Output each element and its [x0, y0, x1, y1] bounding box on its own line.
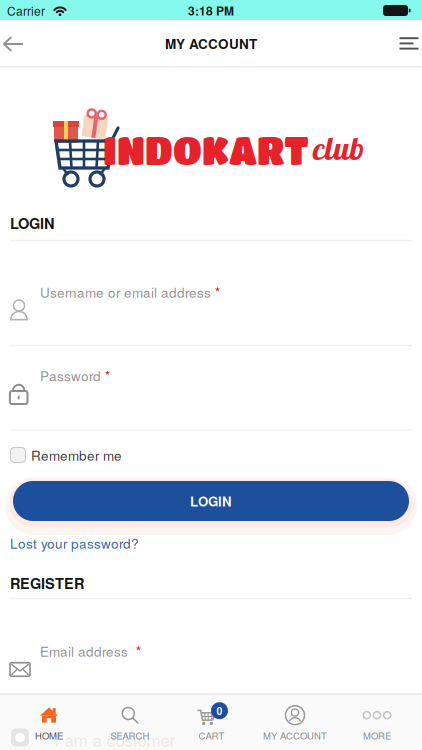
staticText: LOGIN [190, 491, 232, 510]
staticText: Password [40, 366, 101, 385]
staticText: Username or email address [40, 282, 211, 302]
button[interactable]: Back [0, 29, 28, 59]
button[interactable]: SEARCH [88, 699, 172, 747]
button[interactable]: Lost your password? [10, 533, 139, 553]
staticText: * [136, 642, 141, 660]
staticText: SEARCH [110, 729, 149, 742]
staticText: Email address [40, 641, 128, 661]
button[interactable]: Menu [395, 29, 422, 57]
staticText: * [105, 366, 110, 385]
staticText: 3:18 PM [188, 2, 234, 19]
staticText: Remember me [31, 445, 122, 465]
staticText: club [313, 128, 364, 168]
staticText: CART [198, 729, 224, 742]
staticText: MORE [363, 729, 391, 742]
button[interactable]: LOGIN [13, 481, 409, 521]
button[interactable]: HOME [7, 699, 91, 747]
button[interactable]: MY ACCOUNT [253, 699, 337, 747]
staticText: INDOKART [103, 128, 309, 172]
staticText: Carrier [7, 2, 45, 19]
staticText: 0 [216, 703, 222, 718]
staticText: REGISTER [10, 573, 84, 593]
button[interactable]: MORE [335, 699, 419, 747]
staticText: LOGIN [10, 213, 54, 233]
button[interactable]: 0 [169, 699, 253, 747]
button[interactable]: Remember me [10, 445, 122, 465]
staticText: I am a customer [54, 727, 175, 750]
staticText: MY ACCOUNT [165, 34, 257, 53]
staticText: * [215, 283, 220, 301]
staticText: MY ACCOUNT [263, 729, 327, 742]
staticText: Lost your password? [10, 533, 139, 553]
staticText: HOME [35, 729, 63, 742]
